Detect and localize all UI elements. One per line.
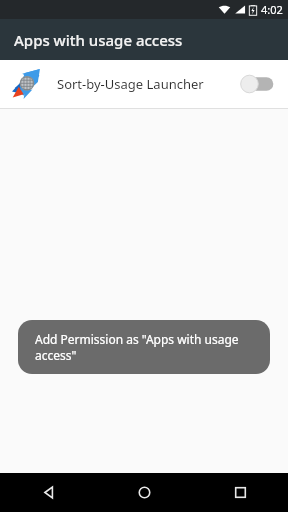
staticText: Add Permission as "Apps with usage acces… [35,331,253,363]
button[interactable]: Sort-by-Usage Launcher usage access togg… [240,73,274,95]
staticText: Apps with usage access [14,30,183,50]
staticText: Sort-by-Usage Launcher [57,75,240,93]
button[interactable]: Add Permission as "Apps with usage acces… [18,320,270,374]
button[interactable]: Back [0,473,96,512]
staticText: 4:02 [261,2,283,17]
button[interactable]: Sort-by-Usage Launcher [0,60,288,108]
button[interactable]: Home [96,473,192,512]
button[interactable]: Recent apps [192,473,288,512]
